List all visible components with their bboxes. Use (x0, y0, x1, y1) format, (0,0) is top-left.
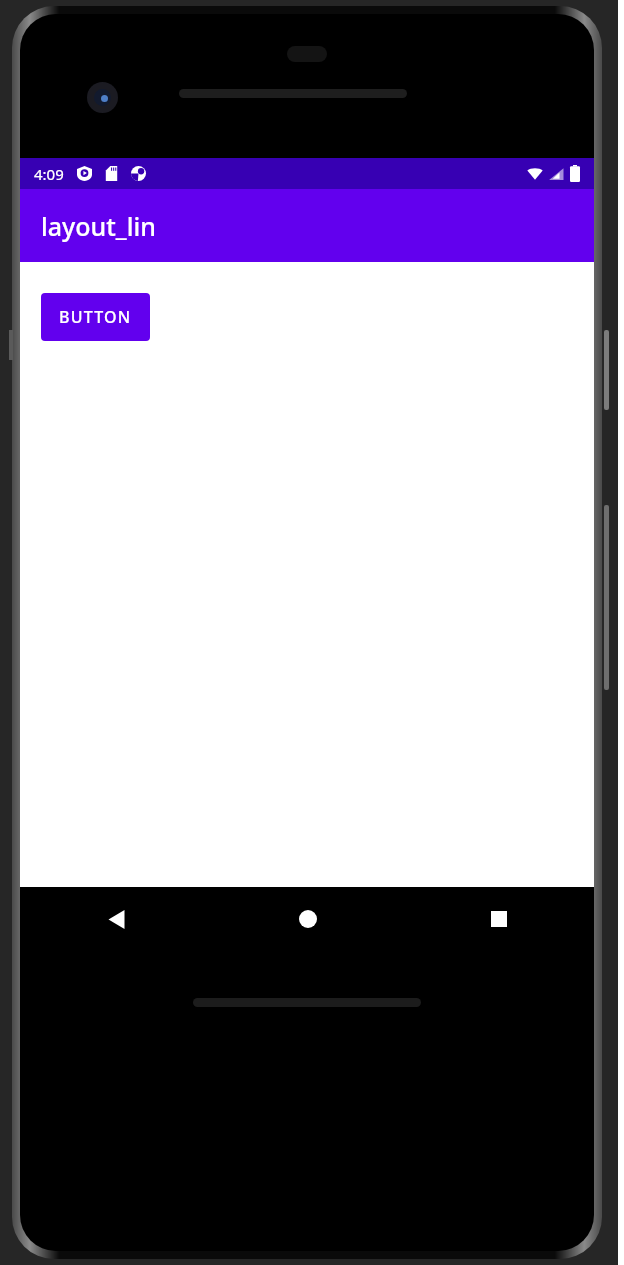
button[interactable]: BUTTON (41, 293, 150, 341)
button[interactable]: Back (20, 887, 212, 951)
staticText: 4:09 (34, 164, 64, 184)
staticText: BUTTON (59, 306, 132, 328)
button[interactable]: Home (212, 887, 403, 951)
staticText: layout_lin (41, 209, 156, 243)
button[interactable]: Recent apps (403, 887, 594, 951)
